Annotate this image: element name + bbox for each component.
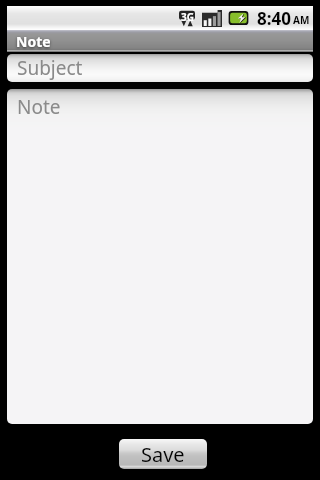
button[interactable]: Subject [7,54,313,82]
staticText: Note [17,94,61,120]
button[interactable]: Save [119,439,207,469]
staticText: Save [141,441,185,468]
staticText: 3G [181,10,194,24]
staticText: Note [16,32,51,51]
button[interactable]: Note [7,89,313,424]
staticText: Subject [17,55,83,81]
staticText: AM [293,13,310,27]
staticText: 8:40 [257,7,291,30]
